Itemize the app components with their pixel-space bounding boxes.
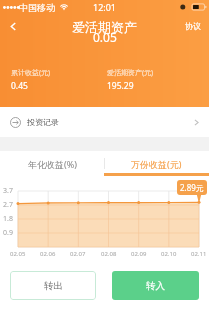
staticText: 2.7 (3, 200, 13, 210)
staticText: 协议 (185, 21, 201, 31)
staticText: 0.9 (3, 228, 13, 238)
staticText: 年化收益(%) (28, 158, 77, 170)
staticText: 爱活期资产(元) (107, 68, 154, 78)
button[interactable]: 转入 (112, 271, 199, 300)
staticText: 爱活期资产 (72, 19, 137, 35)
staticText: 12:01 (93, 1, 117, 13)
staticText: 02.07 (70, 250, 86, 258)
staticText: 万份收益(元) (131, 158, 182, 170)
staticText: 02.09 (131, 250, 147, 258)
staticText: 02.08 (101, 250, 117, 258)
button[interactable]: 转出 (10, 271, 96, 300)
button[interactable]: Back (0, 13, 26, 39)
staticText: 投资记录 (27, 117, 59, 127)
staticText: 3.7 (3, 186, 13, 196)
staticText: 2.89元 (180, 182, 204, 193)
staticText: 195.29 (107, 80, 134, 92)
staticText: 转出 (44, 280, 63, 292)
button[interactable]: 协议 (177, 13, 209, 39)
staticText: 0.45 (11, 80, 28, 92)
button[interactable]: 万份收益(元) (104, 151, 209, 176)
button[interactable]: 年化收益(%) (0, 151, 104, 176)
staticText: 累计收益(元) (11, 68, 51, 78)
staticText: 02.11 (191, 250, 207, 258)
staticText: 02.05 (10, 250, 26, 258)
staticText: 转入 (146, 280, 165, 292)
staticText: 0.05 (93, 29, 117, 45)
staticText: 02.10 (161, 250, 177, 258)
staticText: 中国移动 (19, 2, 55, 13)
staticText: 1.8 (3, 214, 13, 224)
staticText: 02.06 (40, 250, 56, 258)
button[interactable]: 投资记录 (0, 107, 209, 137)
